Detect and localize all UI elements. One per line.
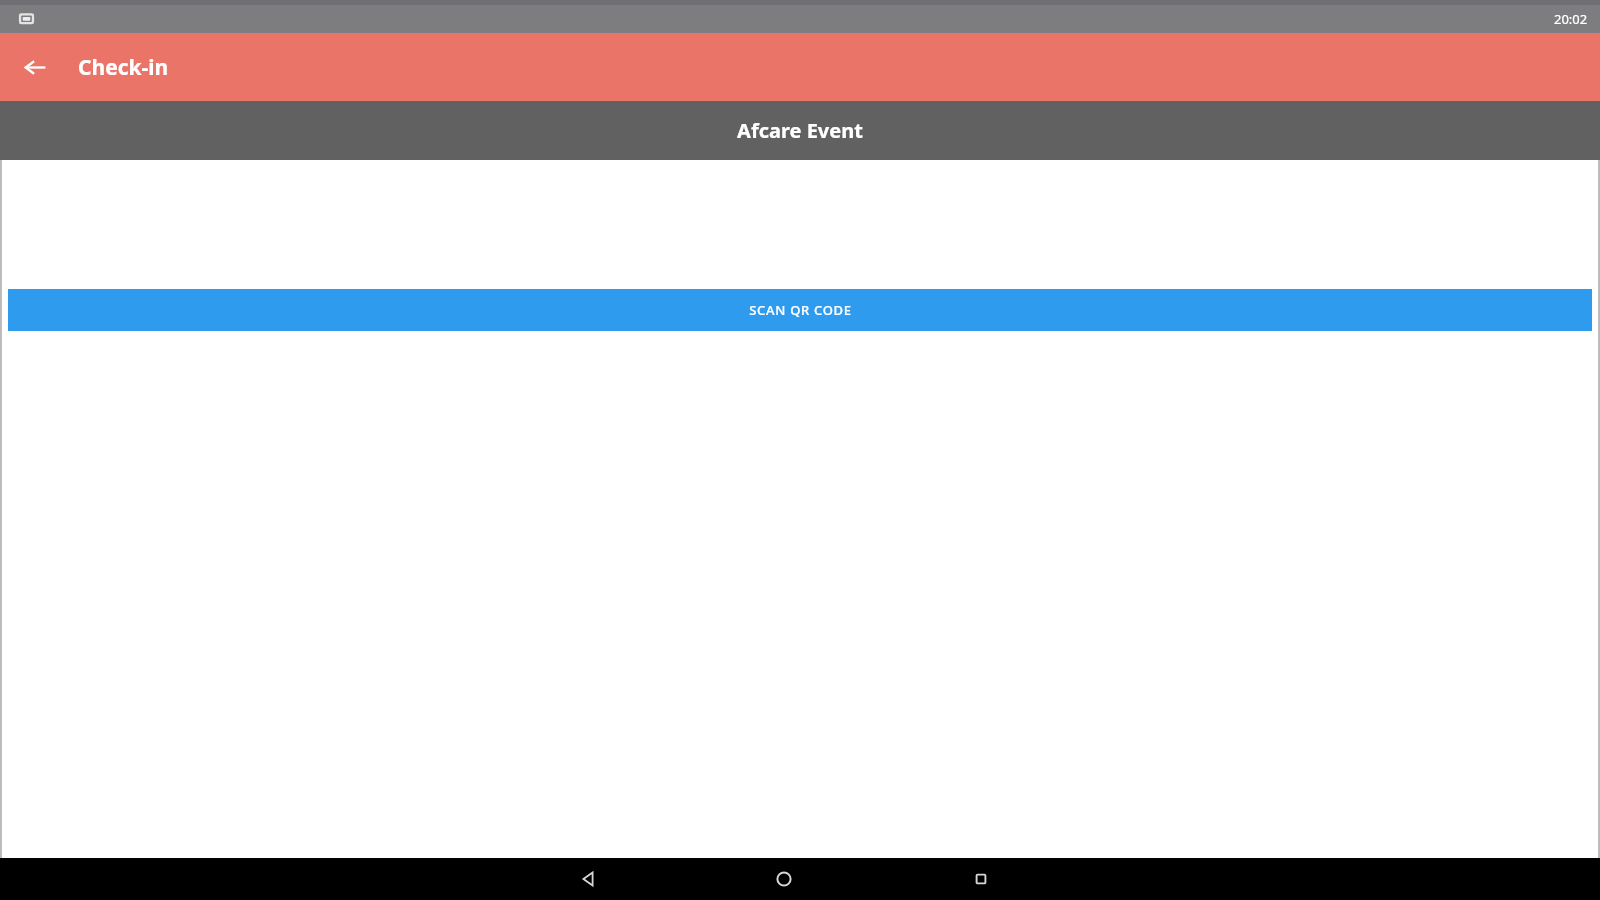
other: Screenshot notification [17,9,36,28]
button[interactable]: Back [548,858,628,900]
staticText: Check-in [78,53,169,82]
button[interactable]: Navigate up [13,45,57,89]
button[interactable]: SCAN QR CODE [8,289,1592,331]
staticText: Afcare Event [737,117,863,144]
staticText: 20:02 [1554,10,1588,28]
staticText: SCAN QR CODE [749,301,852,319]
button[interactable]: Recent apps [941,858,1021,900]
button[interactable]: Home [744,858,824,900]
